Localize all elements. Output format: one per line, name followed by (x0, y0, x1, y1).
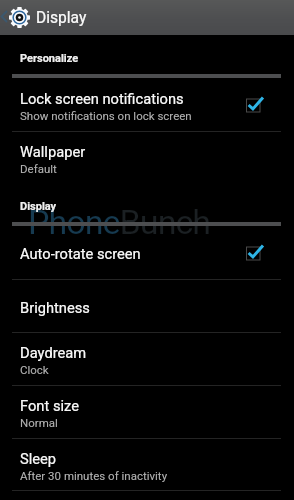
button[interactable]: Auto-rotate screen (0, 226, 294, 279)
staticText: Lock screen notifications (20, 90, 184, 107)
button[interactable]: Toggle Auto-rotate screen (230, 226, 294, 279)
button[interactable]: Sleep (0, 439, 294, 490)
staticText: Daydream (20, 344, 87, 361)
staticText: Font size (20, 397, 80, 414)
button[interactable]: Navigate up (1, 11, 7, 22)
button[interactable]: Brightness (0, 280, 294, 332)
button[interactable]: Lock screen notifications (0, 78, 294, 131)
staticText: Auto-rotate screen (20, 245, 141, 262)
staticText: Display (36, 9, 87, 27)
staticText: Display (20, 200, 57, 213)
staticText: Sleep (20, 450, 57, 467)
staticText: Personalize (20, 52, 79, 65)
staticText: Normal (20, 416, 58, 429)
staticText: Clock (20, 363, 49, 376)
staticText: Wallpaper (20, 143, 86, 160)
staticText: Brightness (20, 299, 90, 316)
staticText: Default (20, 162, 57, 175)
button[interactable]: Font size (0, 386, 294, 438)
staticText: Show notifications on lock screen (20, 109, 192, 122)
button[interactable]: Toggle Lock screen notifications (230, 78, 294, 131)
button[interactable]: Daydream (0, 333, 294, 385)
staticText: After 30 minutes of inactivity (20, 469, 168, 482)
button[interactable]: Wallpaper (0, 132, 294, 184)
staticText: PhoneBunch (28, 202, 211, 242)
